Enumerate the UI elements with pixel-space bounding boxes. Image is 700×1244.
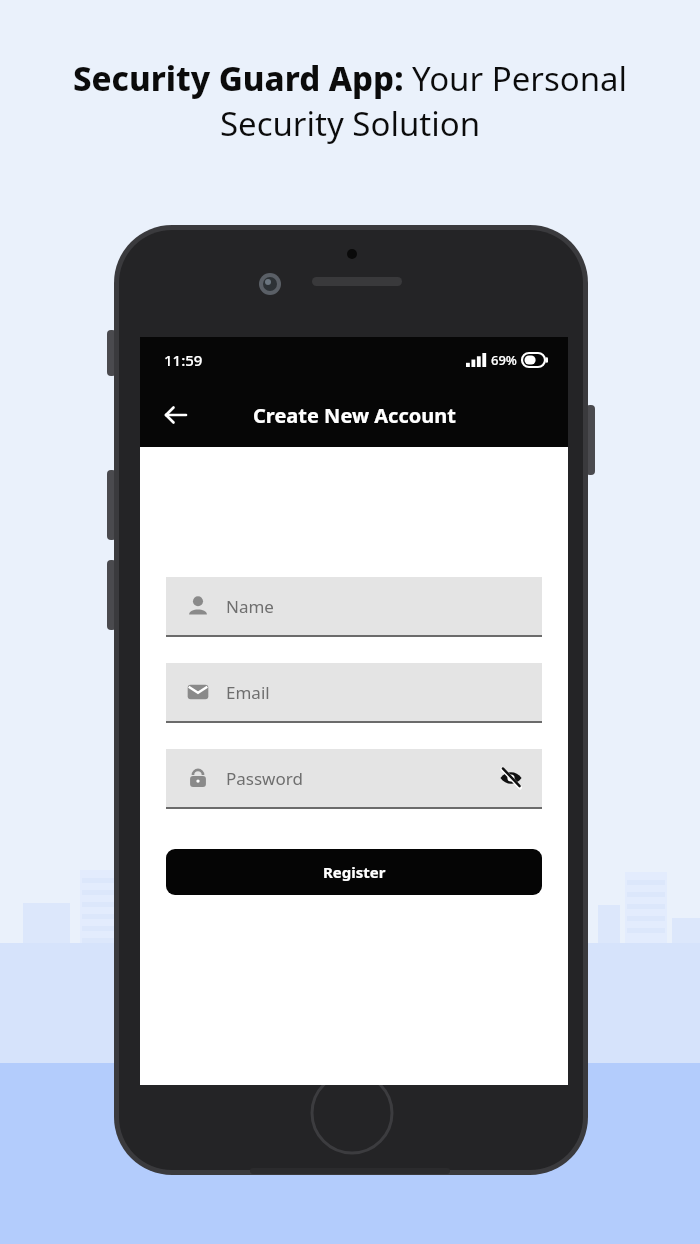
- button[interactable]: Email: [166, 663, 542, 721]
- button[interactable]: Password: [166, 749, 542, 807]
- staticText: Create New Account: [253, 402, 456, 429]
- staticText: Name: [226, 595, 274, 618]
- staticText: Register: [323, 862, 386, 882]
- button[interactable]: Show password: [496, 763, 526, 793]
- staticText: 11:59: [164, 350, 203, 370]
- staticText: 69%: [491, 351, 517, 369]
- button[interactable]: Back: [154, 393, 198, 437]
- staticText: Email: [226, 681, 270, 704]
- button[interactable]: Register: [166, 849, 542, 895]
- staticText: Security Guard App: Your Personal Securi…: [70, 56, 630, 145]
- staticText: Password: [226, 767, 303, 790]
- button[interactable]: Name: [166, 577, 542, 635]
